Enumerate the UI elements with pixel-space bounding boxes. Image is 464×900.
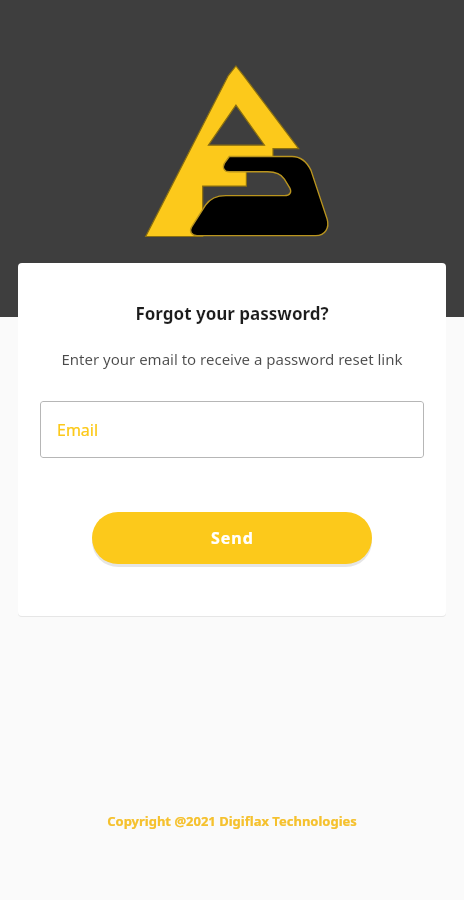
staticText: Copyright @2021 Digiflax Technologies xyxy=(0,812,464,830)
button[interactable]: Copyright @2021 Digiflax Technologies xyxy=(0,812,464,830)
button[interactable]: Send xyxy=(92,512,372,564)
staticText: Forgot your password? xyxy=(18,302,446,325)
staticText: Enter your email to receive a password r… xyxy=(46,349,418,369)
staticText: Send xyxy=(211,527,254,549)
button[interactable]: Email xyxy=(40,401,424,458)
staticText: Email xyxy=(57,419,99,441)
